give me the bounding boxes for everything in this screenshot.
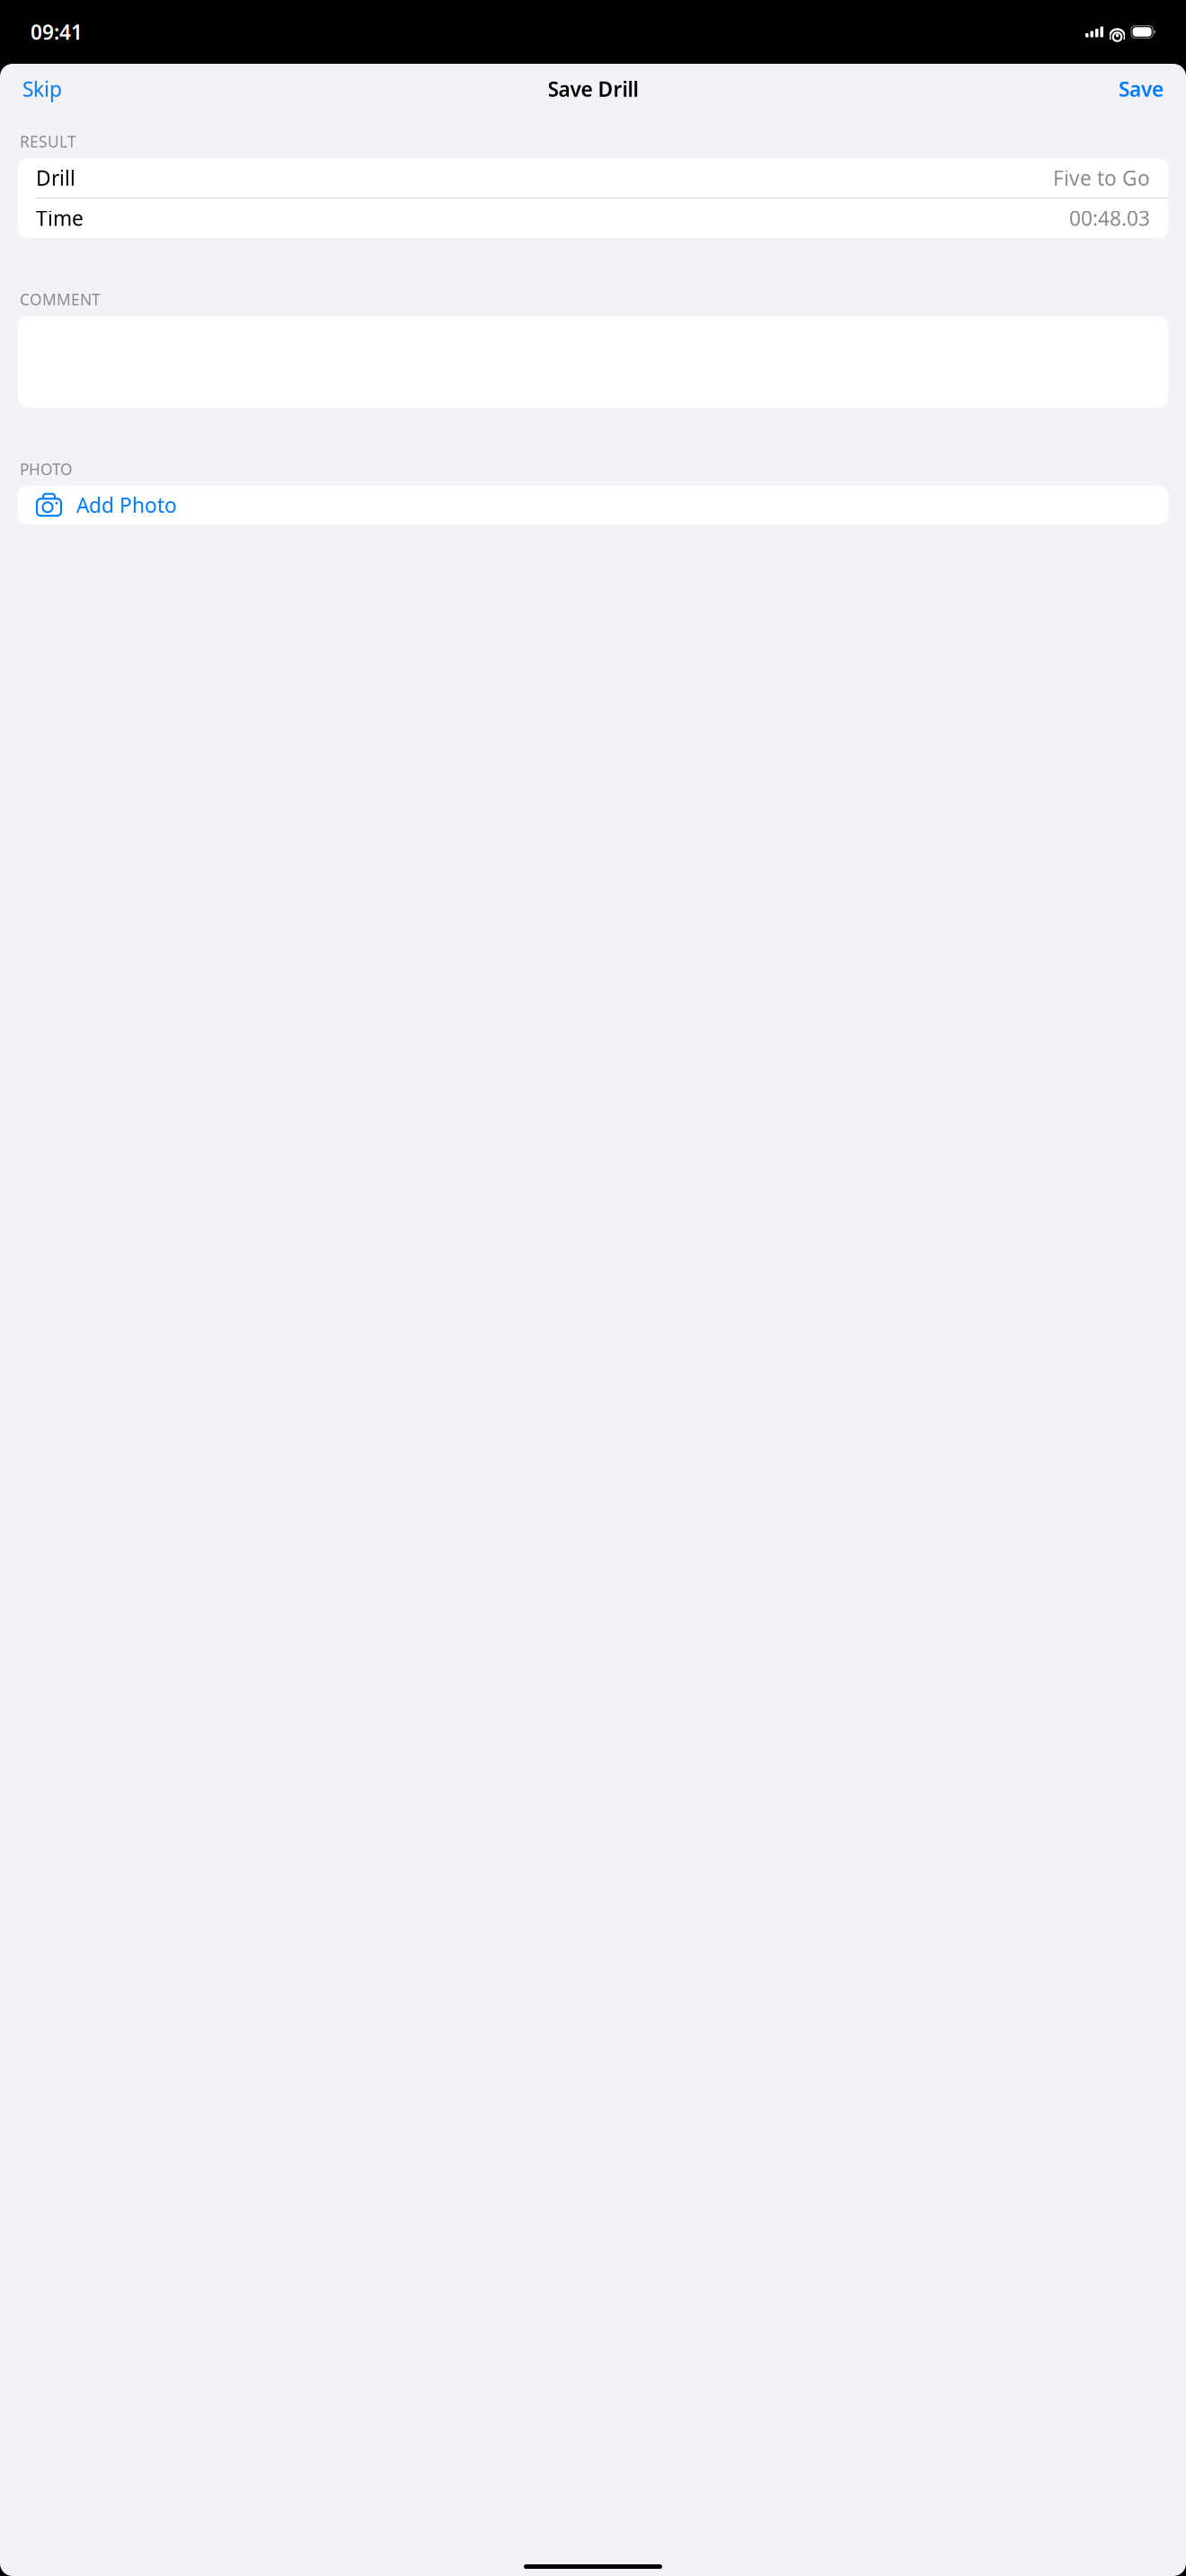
staticText: Time (36, 205, 84, 232)
staticText: RESULT (20, 131, 76, 152)
staticText: Save Drill (548, 75, 638, 102)
button[interactable]: Save (1115, 68, 1167, 110)
staticText: Add Photo (76, 491, 177, 519)
staticText: Drill (36, 164, 75, 191)
staticText: 00:48.03 (1069, 205, 1150, 232)
staticText: Save (1119, 75, 1164, 102)
staticText: 09:41 (31, 18, 83, 45)
staticText: PHOTO (20, 459, 73, 479)
staticText: COMMENT (20, 289, 101, 310)
button[interactable]: Skip (19, 68, 66, 110)
staticText: Skip (22, 75, 62, 102)
button[interactable]: Add Photo (0, 486, 1186, 524)
staticText: Five to Go (1053, 164, 1150, 191)
